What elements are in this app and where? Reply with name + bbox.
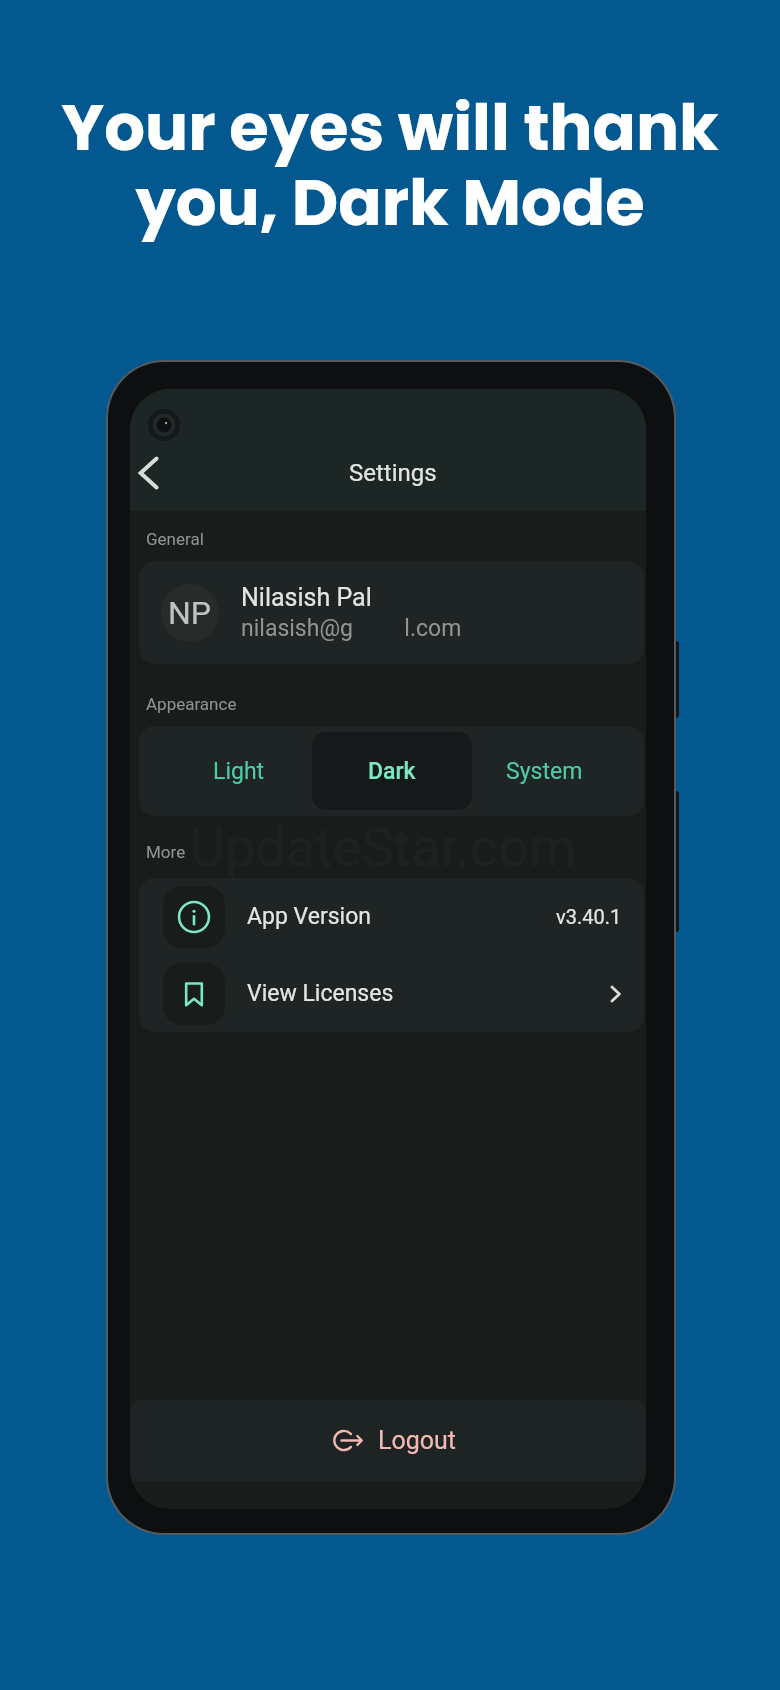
staticText: More	[146, 842, 186, 862]
button[interactable]: Back	[130, 446, 176, 500]
staticText: Light	[213, 758, 265, 785]
button[interactable]: View Licenses	[139, 955, 644, 1032]
staticText: View Licenses	[247, 980, 394, 1007]
button[interactable]: Logout	[130, 1400, 646, 1481]
staticText: Dark	[368, 758, 416, 785]
staticText: Your eyes will thank you, Dark Mode	[0, 83, 780, 247]
staticText: System	[506, 758, 583, 785]
button[interactable]: App Version	[139, 878, 644, 955]
staticText: Appearance	[146, 694, 237, 714]
staticText: Nilasish Pal	[241, 583, 372, 612]
staticText: Logout	[378, 1426, 456, 1455]
button[interactable]: Dark	[312, 732, 472, 810]
button[interactable]: NP	[139, 561, 644, 664]
staticText: App Version	[247, 903, 371, 930]
staticText: nilasish@g l.com	[241, 615, 462, 642]
button[interactable]: System	[480, 732, 640, 810]
staticText: General	[146, 529, 204, 549]
staticText: NP	[168, 594, 212, 632]
staticText: v3.40.1	[556, 905, 622, 928]
button[interactable]: Light	[143, 732, 304, 810]
staticText: Settings	[349, 459, 437, 487]
